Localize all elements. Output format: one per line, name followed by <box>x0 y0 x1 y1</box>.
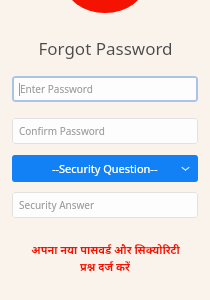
staticText: Security Answer <box>19 198 95 212</box>
staticText: प्रश्न दर्ज करें <box>80 259 130 274</box>
button[interactable]: Select security question <box>12 155 198 182</box>
staticText: Confirm Password <box>19 124 105 138</box>
button[interactable]: Confirm Password <box>12 118 198 144</box>
button[interactable]: Security Answer <box>12 192 198 218</box>
button[interactable]: Enter Password <box>12 76 198 102</box>
staticText: --Security Question-- <box>52 161 158 176</box>
staticText: Enter Password <box>20 82 93 96</box>
staticText: Forgot Password <box>38 37 173 60</box>
staticText: अपना नया पासवर्ड और सिक्योरिटी <box>31 242 180 257</box>
